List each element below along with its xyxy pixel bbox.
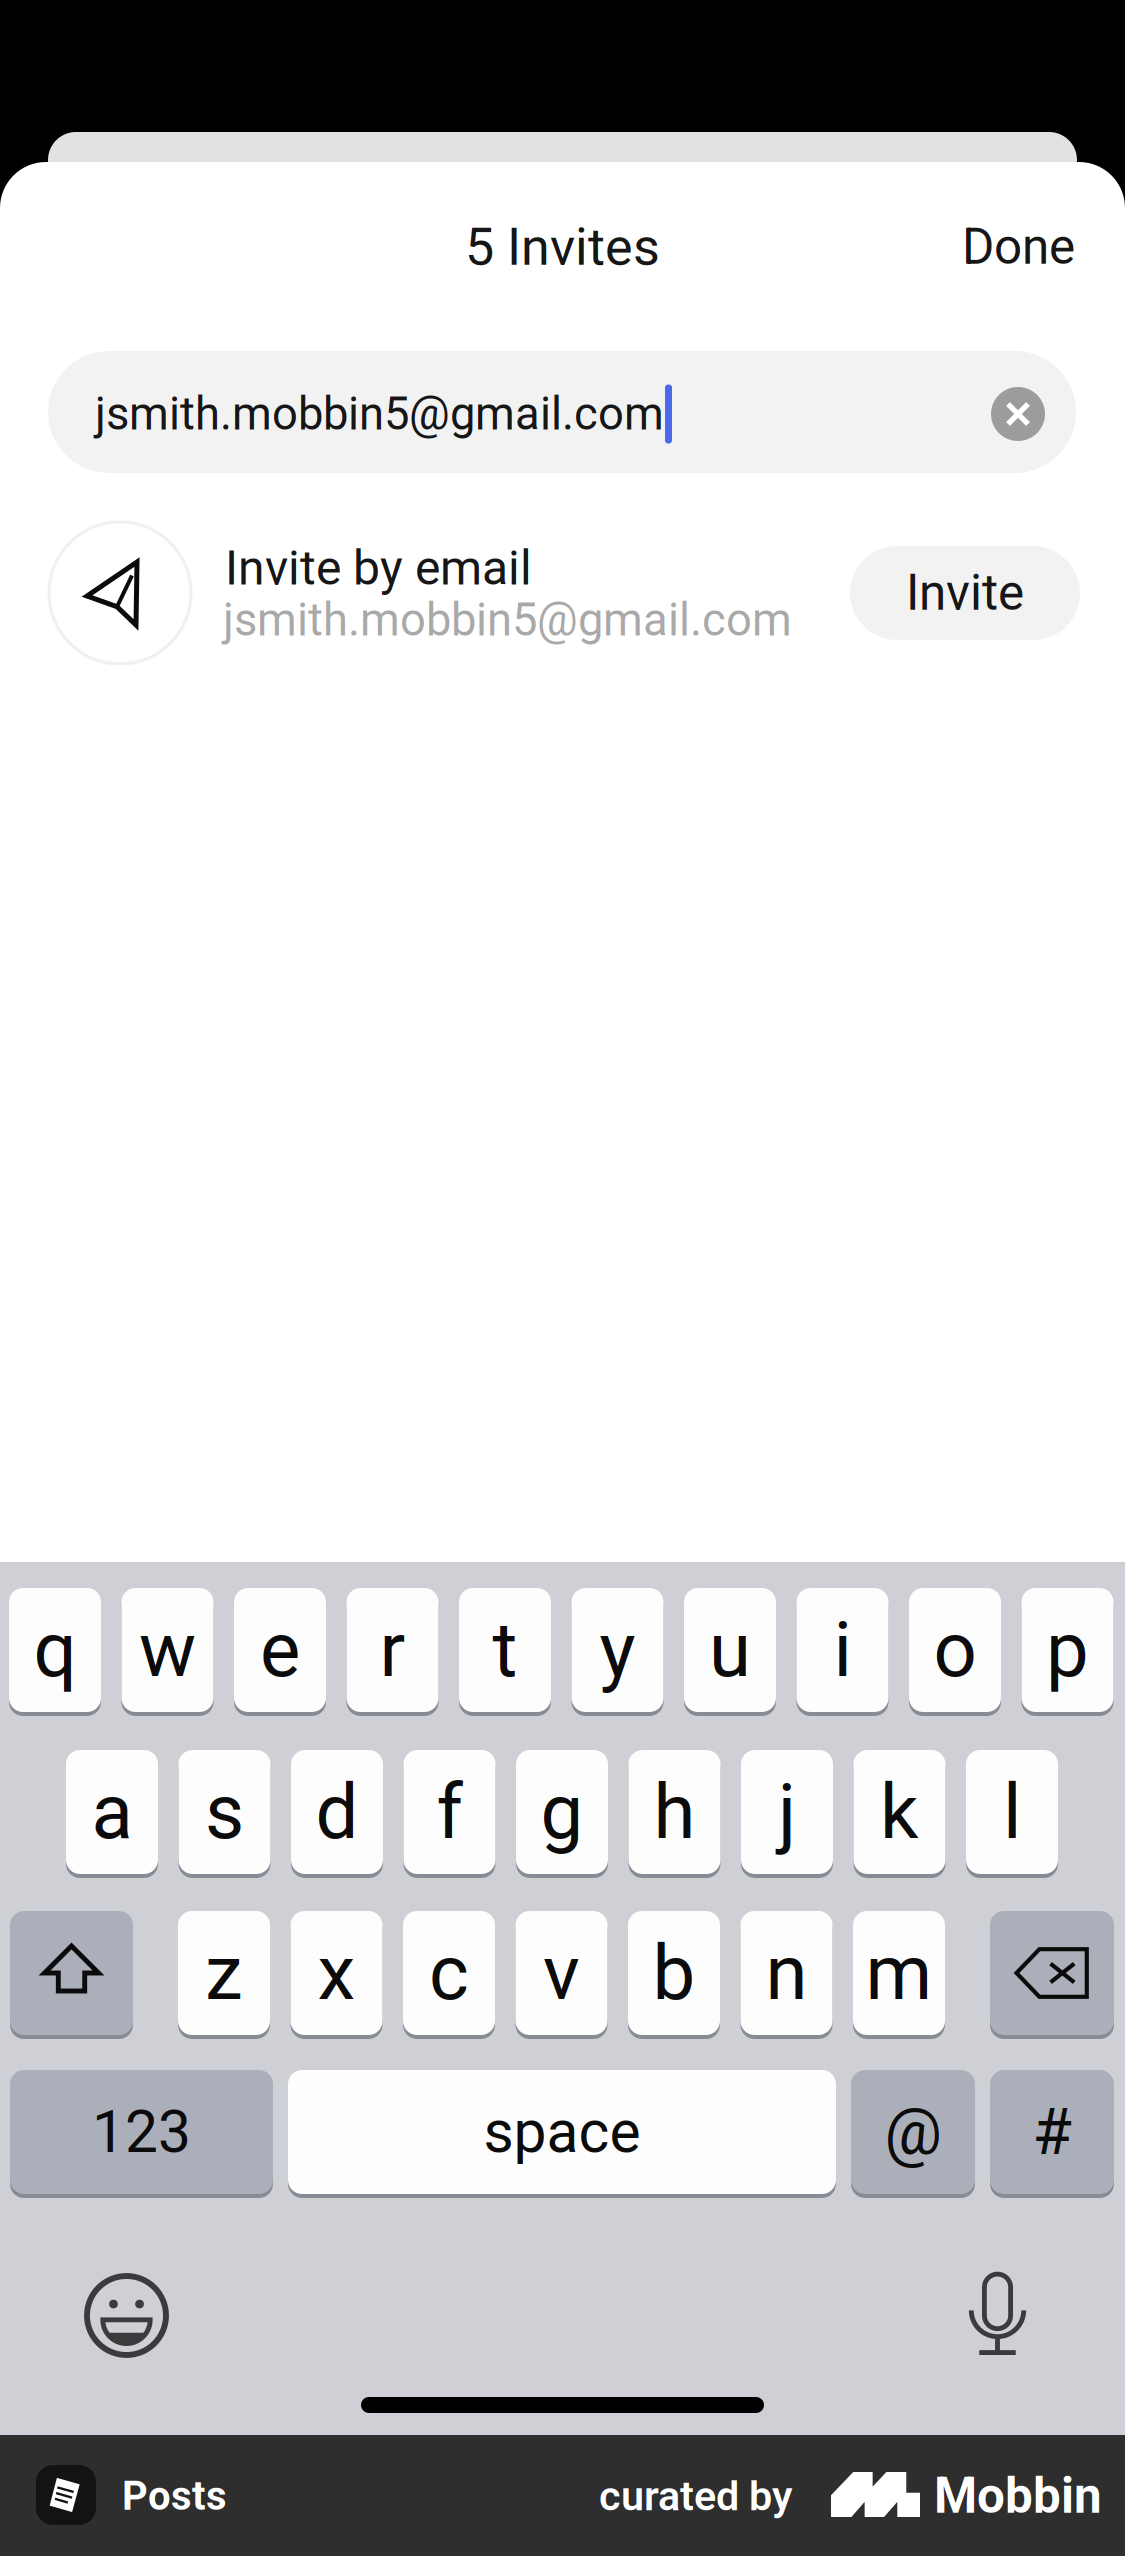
button[interactable]: q [9,1588,101,1716]
button[interactable]: d [291,1750,383,1878]
button[interactable]: # [990,2070,1114,2198]
staticText: p [1046,1605,1089,1695]
button[interactable]: x [290,1911,382,2039]
button[interactable]: e [234,1588,326,1716]
button[interactable]: Posts [122,2466,342,2526]
staticText: y [599,1605,635,1695]
button[interactable]: @ [851,2070,975,2198]
button[interactable]: Delete [990,1911,1114,2039]
staticText: m [865,1928,932,2018]
staticText: k [880,1767,919,1857]
button[interactable]: i [796,1588,888,1716]
staticText: b [652,1928,695,2018]
staticText: j [778,1767,796,1857]
button[interactable]: 123 [10,2070,273,2198]
button[interactable]: s [178,1750,270,1878]
button[interactable]: z [178,1911,270,2039]
staticText: n [765,1928,807,2018]
staticText: x [317,1928,355,2018]
button[interactable]: g [516,1750,608,1878]
button[interactable]: space [288,2070,836,2198]
staticText: jsmith.mobbin5@gmail.com [223,593,792,646]
button[interactable]: k [853,1750,945,1878]
button[interactable]: t [459,1588,551,1716]
button[interactable]: Clear text [991,387,1045,441]
staticText: a [91,1767,132,1857]
staticText: r [379,1605,405,1695]
staticText: curated by [599,2472,793,2520]
button[interactable]: o [909,1588,1001,1716]
button[interactable]: l [966,1750,1058,1878]
staticText: l [1003,1767,1021,1857]
button[interactable]: Emoji keyboard [87,2276,166,2355]
staticText: Mobbin [934,2467,1102,2525]
button[interactable]: w [121,1588,213,1716]
button[interactable]: p [1021,1588,1113,1716]
button[interactable]: r [346,1588,438,1716]
staticText: w [139,1605,196,1695]
button[interactable]: u [684,1588,776,1716]
staticText: 123 [92,2098,191,2166]
staticText: c [429,1928,469,2018]
button[interactable]: y [571,1588,663,1716]
button[interactable]: Done [865,211,1075,283]
staticText: s [205,1767,244,1857]
staticText: q [33,1605,76,1695]
staticText: i [833,1605,851,1695]
button[interactable]: a [66,1750,158,1878]
staticText: h [653,1767,695,1857]
button[interactable]: Invite [850,546,1080,640]
button[interactable]: Shift [10,1911,133,2039]
staticText: g [540,1767,583,1857]
staticText: u [709,1605,751,1695]
staticText: space [483,2098,640,2166]
staticText: 5 Invites [465,216,660,277]
staticText: o [933,1605,976,1695]
button[interactable]: j [741,1750,833,1878]
staticText: Invite [906,564,1024,622]
staticText: v [543,1928,580,2018]
button[interactable]: n [740,1911,832,2039]
staticText: z [205,1928,243,2018]
staticText: f [436,1767,462,1857]
button[interactable]: h [628,1750,720,1878]
staticText: e [260,1605,300,1695]
button[interactable]: m [853,1911,945,2039]
button[interactable]: f [403,1750,495,1878]
staticText: @ [884,2094,941,2169]
button[interactable]: Dictate [969,2270,1026,2356]
staticText: jsmith.mobbin5@gmail.com [95,387,664,440]
staticText: Posts [122,2473,227,2519]
staticText: d [315,1767,358,1857]
button[interactable]: c [403,1911,495,2039]
staticText: # [1032,2094,1071,2169]
staticText: Invite by email [225,540,532,596]
staticText: t [492,1605,517,1695]
staticText: Done [962,218,1075,276]
button[interactable]: b [628,1911,720,2039]
button[interactable]: v [515,1911,607,2039]
